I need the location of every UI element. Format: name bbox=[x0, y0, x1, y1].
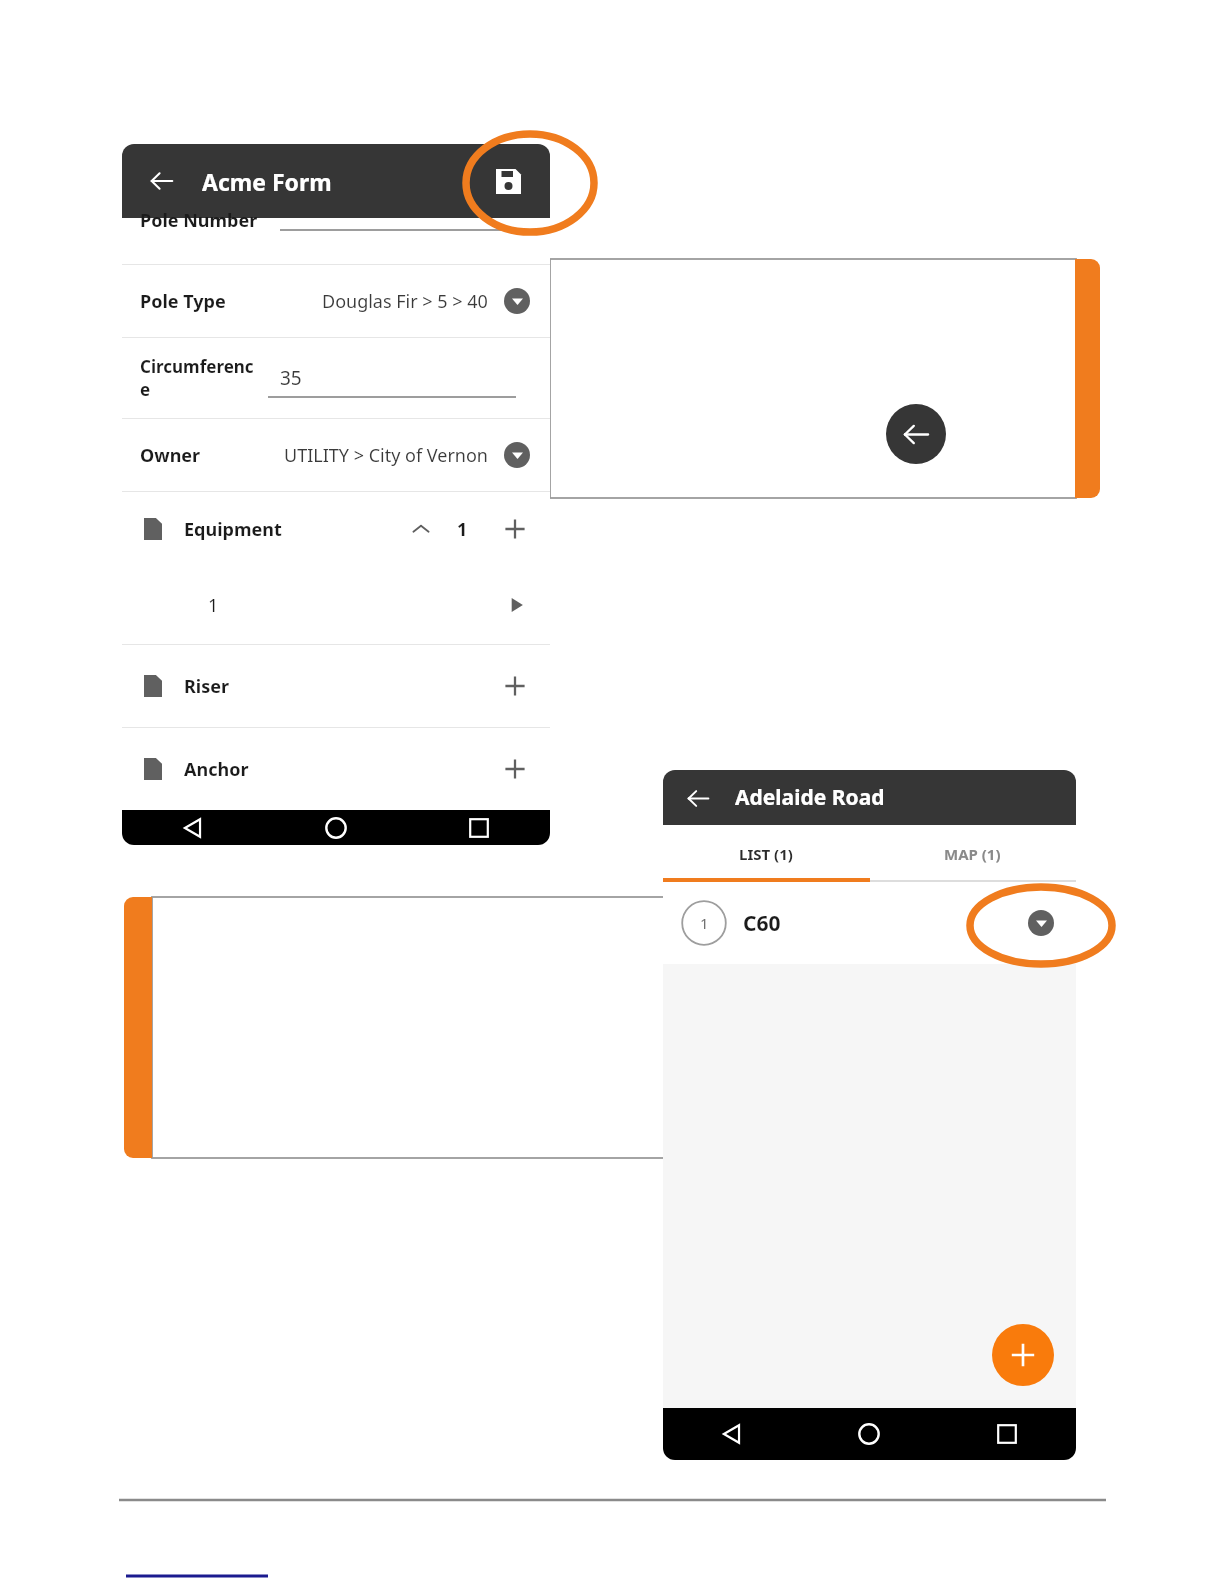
staticText: e bbox=[140, 378, 151, 401]
staticText: 1 bbox=[457, 517, 468, 542]
button[interactable]: Navigate up bbox=[681, 781, 715, 815]
button[interactable]: Equipment bbox=[122, 492, 550, 566]
staticText: Anchor bbox=[184, 757, 249, 782]
staticText: C60 bbox=[743, 909, 781, 938]
staticText: LIST (1) bbox=[739, 844, 793, 864]
other: Add Anchor bbox=[502, 756, 528, 782]
other: Add equipment bbox=[502, 516, 528, 542]
button[interactable]: Pole Type bbox=[122, 265, 550, 337]
button[interactable]: Back bbox=[886, 404, 946, 464]
staticText: 35 bbox=[280, 365, 302, 391]
button[interactable]: 1 bbox=[122, 566, 550, 644]
button[interactable]: Owner bbox=[122, 419, 550, 491]
staticText: Pole Type bbox=[140, 289, 226, 314]
button[interactable]: Riser bbox=[122, 645, 550, 727]
staticText: Douglas Fir > 5 > 40 bbox=[322, 289, 488, 314]
staticText: MAP (1) bbox=[944, 844, 1001, 864]
staticText: 1 bbox=[700, 913, 709, 933]
staticText: Riser bbox=[184, 674, 230, 699]
staticText: Acme Form bbox=[202, 166, 332, 197]
button[interactable]: Add bbox=[992, 1324, 1054, 1386]
button[interactable]: LIST (1) bbox=[663, 825, 869, 882]
button[interactable]: MAP (1) bbox=[869, 825, 1076, 882]
staticText: Adelaide Road bbox=[735, 783, 885, 812]
staticText: Equipment bbox=[184, 517, 282, 542]
button[interactable]: Anchor bbox=[122, 728, 550, 810]
button[interactable]: Save bbox=[488, 161, 528, 201]
button[interactable]: Circumferenc bbox=[122, 338, 550, 418]
staticText: Pole Number bbox=[140, 208, 258, 233]
staticText: 1 bbox=[208, 593, 219, 618]
other: Add Riser bbox=[502, 673, 528, 699]
staticText: UTILITY > City of Vernon bbox=[284, 443, 488, 468]
staticText: Owner bbox=[140, 443, 201, 468]
button[interactable]: 1 bbox=[663, 882, 1076, 964]
staticText: Circumferenc bbox=[140, 355, 254, 378]
button[interactable]: Expand bbox=[1028, 910, 1054, 936]
button[interactable]: Navigate up bbox=[144, 163, 180, 199]
